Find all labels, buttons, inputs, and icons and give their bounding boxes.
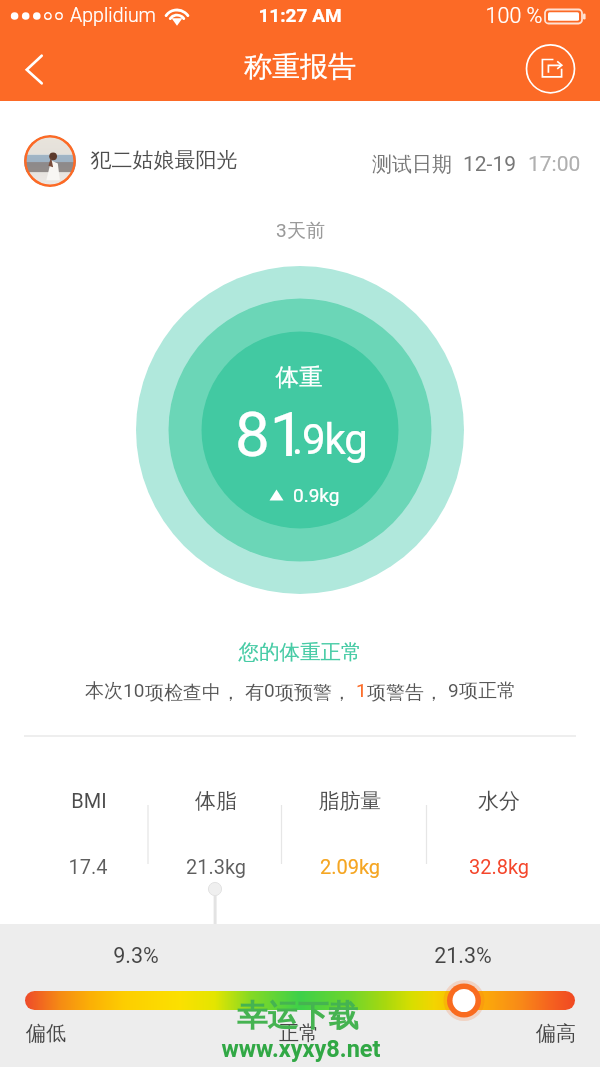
staticText: 17:00 bbox=[528, 152, 581, 177]
staticText: 0.9kg bbox=[293, 484, 340, 506]
staticText: 称重报告 bbox=[170, 49, 430, 84]
staticText: 体脂 bbox=[146, 788, 286, 814]
staticText: 项检查中， 有 bbox=[145, 679, 264, 705]
staticText: 2.09kg bbox=[280, 855, 420, 878]
button[interactable]: User avatar bbox=[24, 135, 76, 187]
staticText: 测试日期 bbox=[372, 152, 452, 177]
staticText: 水分 bbox=[429, 788, 569, 814]
staticText: 21.3kg bbox=[146, 855, 286, 878]
staticText: 犯二姑娘最阳光 bbox=[54, 147, 274, 173]
staticText: 体重 bbox=[219, 362, 379, 392]
staticText: BMI bbox=[19, 789, 159, 812]
staticText: 偏低 bbox=[0, 1021, 106, 1046]
staticText: 100 % bbox=[444, 3, 584, 28]
staticText: 11:27 AM bbox=[200, 4, 400, 26]
staticText: 项正常 bbox=[459, 679, 516, 703]
staticText: 您的体重正常 bbox=[150, 639, 450, 665]
staticText: 项预警， bbox=[275, 679, 356, 705]
staticText: 正常 bbox=[239, 1021, 359, 1046]
staticText: 3 bbox=[276, 219, 287, 241]
staticText: 12-19 bbox=[463, 152, 517, 177]
staticText: 9.3% bbox=[56, 943, 216, 968]
staticText: 1 bbox=[356, 679, 367, 701]
staticText: 幸运下载 bbox=[148, 997, 448, 1035]
staticText: 17.4 bbox=[18, 855, 158, 878]
staticText: 本次 bbox=[85, 679, 123, 703]
staticText: 脂肪量 bbox=[280, 788, 420, 814]
staticText: 0 bbox=[264, 679, 275, 701]
staticText: 偏高 bbox=[496, 1021, 600, 1046]
staticText: 9 bbox=[448, 679, 459, 701]
staticText: 10 bbox=[123, 679, 145, 701]
staticText: www.xyxy8.net bbox=[131, 1035, 471, 1063]
staticText: 项警告， bbox=[367, 679, 448, 705]
staticText: 天前 bbox=[287, 219, 325, 243]
button[interactable]: Back bbox=[5, 47, 49, 91]
staticText: Applidium bbox=[23, 4, 203, 27]
staticText: .9kg bbox=[292, 415, 367, 464]
staticText: 21.3% bbox=[383, 943, 543, 968]
staticText: 32.8kg bbox=[429, 855, 569, 878]
staticText: 81 bbox=[235, 398, 305, 471]
button[interactable]: Share bbox=[525, 43, 576, 94]
